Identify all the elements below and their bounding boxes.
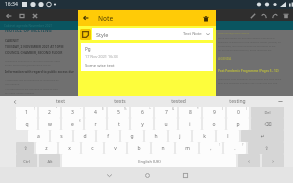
button[interactable]: 5	[108, 106, 129, 118]
staticText: (	[222, 107, 223, 111]
button[interactable]: o	[203, 118, 225, 130]
staticText: TUESDAY, 2 NOVEMBER 2021 AT 10PM	[5, 45, 64, 49]
staticText: testing	[229, 98, 246, 105]
button[interactable]: Delete note	[199, 12, 212, 25]
button[interactable]: text	[30, 96, 90, 107]
button[interactable]: ,	[200, 142, 222, 154]
staticText: ›	[272, 158, 274, 165]
button[interactable]: 1	[16, 106, 37, 118]
button[interactable]: p	[227, 118, 249, 130]
button[interactable]: i	[179, 118, 201, 130]
button[interactable]: j	[169, 130, 191, 142]
staticText: 5	[117, 109, 120, 116]
button[interactable]: m	[176, 142, 198, 154]
button[interactable]: tested	[149, 96, 208, 107]
button[interactable]: Previous suggestions	[0, 96, 30, 107]
staticText: v	[114, 145, 117, 152]
button[interactable]: k	[193, 130, 215, 142]
staticText: 3	[71, 109, 74, 116]
button[interactable]: ›	[262, 154, 284, 168]
button[interactable]: t	[108, 118, 129, 130]
staticText: $	[102, 107, 104, 111]
button[interactable]: h	[145, 130, 167, 142]
button[interactable]: Alt	[39, 154, 60, 168]
staticText: &	[172, 107, 175, 111]
staticText: €	[79, 119, 81, 123]
staticText: Note	[98, 14, 114, 23]
button[interactable]: b	[128, 142, 150, 154]
button[interactable]: 8	[179, 106, 201, 118]
staticText: t	[118, 121, 120, 128]
button[interactable]: texts	[90, 96, 149, 107]
staticText: 6	[141, 109, 144, 116]
button[interactable]: 2	[39, 106, 60, 118]
button[interactable]: More suggestions	[267, 96, 293, 107]
button[interactable]: Back	[95, 167, 123, 183]
button[interactable]: c	[82, 142, 103, 154]
button[interactable]: r	[85, 118, 106, 130]
staticText: !	[219, 143, 220, 147]
button[interactable]: 7	[155, 106, 177, 118]
button[interactable]: 0	[227, 106, 249, 118]
staticText: Information with regard to public access…	[5, 70, 74, 74]
button[interactable]: 6	[131, 106, 153, 118]
button[interactable]: l	[217, 130, 239, 142]
button[interactable]: f	[97, 130, 119, 142]
button[interactable]: .	[224, 142, 246, 154]
staticText: LetterDOC Post Pandemic programme that t…	[218, 77, 282, 80]
staticText: 16:34	[5, 1, 18, 8]
button[interactable]: s	[51, 130, 72, 142]
staticText: 7	[165, 109, 168, 116]
staticText: q	[25, 121, 29, 128]
button[interactable]: w	[39, 118, 60, 130]
staticText: Text Note	[183, 31, 202, 37]
button[interactable]: e	[62, 118, 83, 130]
button[interactable]: ‹	[238, 154, 260, 168]
button[interactable]: 4	[85, 106, 106, 118]
button[interactable]: d	[74, 130, 95, 142]
staticText: f	[107, 133, 109, 140]
button[interactable]: ⇧	[16, 142, 34, 154]
staticText: Alt	[47, 159, 53, 164]
staticText: Ctrl	[23, 159, 30, 164]
button[interactable]: v	[105, 142, 126, 154]
button[interactable]: English (UK)	[62, 154, 236, 168]
staticText: by Public Health England	[5, 91, 35, 94]
button[interactable]: 9	[203, 106, 225, 118]
button[interactable]: x	[59, 142, 80, 154]
staticText: b	[137, 145, 141, 152]
staticText: on the recommendations). Email requests …	[218, 48, 272, 51]
button[interactable]: Ctrl	[16, 154, 37, 168]
button[interactable]: u	[155, 118, 177, 130]
staticText: • Attendees will be requested to underta…	[5, 78, 59, 81]
button[interactable]: ⌫	[251, 118, 284, 130]
button[interactable]: g	[121, 130, 143, 142]
staticText: s	[60, 133, 63, 140]
button[interactable]: testing	[208, 96, 267, 107]
staticText: Telephone enquiries to Technical Service…	[5, 59, 60, 62]
button[interactable]: z	[36, 142, 57, 154]
staticText: Pg	[85, 46, 91, 52]
staticText: ^	[149, 107, 151, 111]
staticText: a	[37, 133, 40, 140]
button[interactable]: Back	[80, 12, 92, 24]
staticText: x	[68, 145, 71, 152]
button[interactable]: ↵	[241, 130, 284, 142]
button[interactable]: Del	[251, 106, 284, 118]
button[interactable]: y	[131, 118, 153, 130]
staticText: texts	[114, 98, 126, 105]
staticText: p	[236, 121, 240, 128]
button[interactable]: ⇧	[248, 142, 284, 154]
staticText: 8	[189, 109, 192, 116]
button[interactable]: a	[28, 130, 49, 142]
staticText: e	[71, 121, 74, 128]
button[interactable]: 3	[62, 106, 83, 118]
staticText: ,	[210, 145, 212, 152]
button[interactable]: Home	[133, 167, 161, 183]
button[interactable]: Note style	[80, 29, 91, 40]
button[interactable]: n	[152, 142, 174, 154]
button[interactable]: Recent apps	[171, 167, 199, 183]
staticText: g	[130, 133, 134, 140]
button[interactable]: Style	[92, 28, 213, 40]
button[interactable]: q	[16, 118, 37, 130]
